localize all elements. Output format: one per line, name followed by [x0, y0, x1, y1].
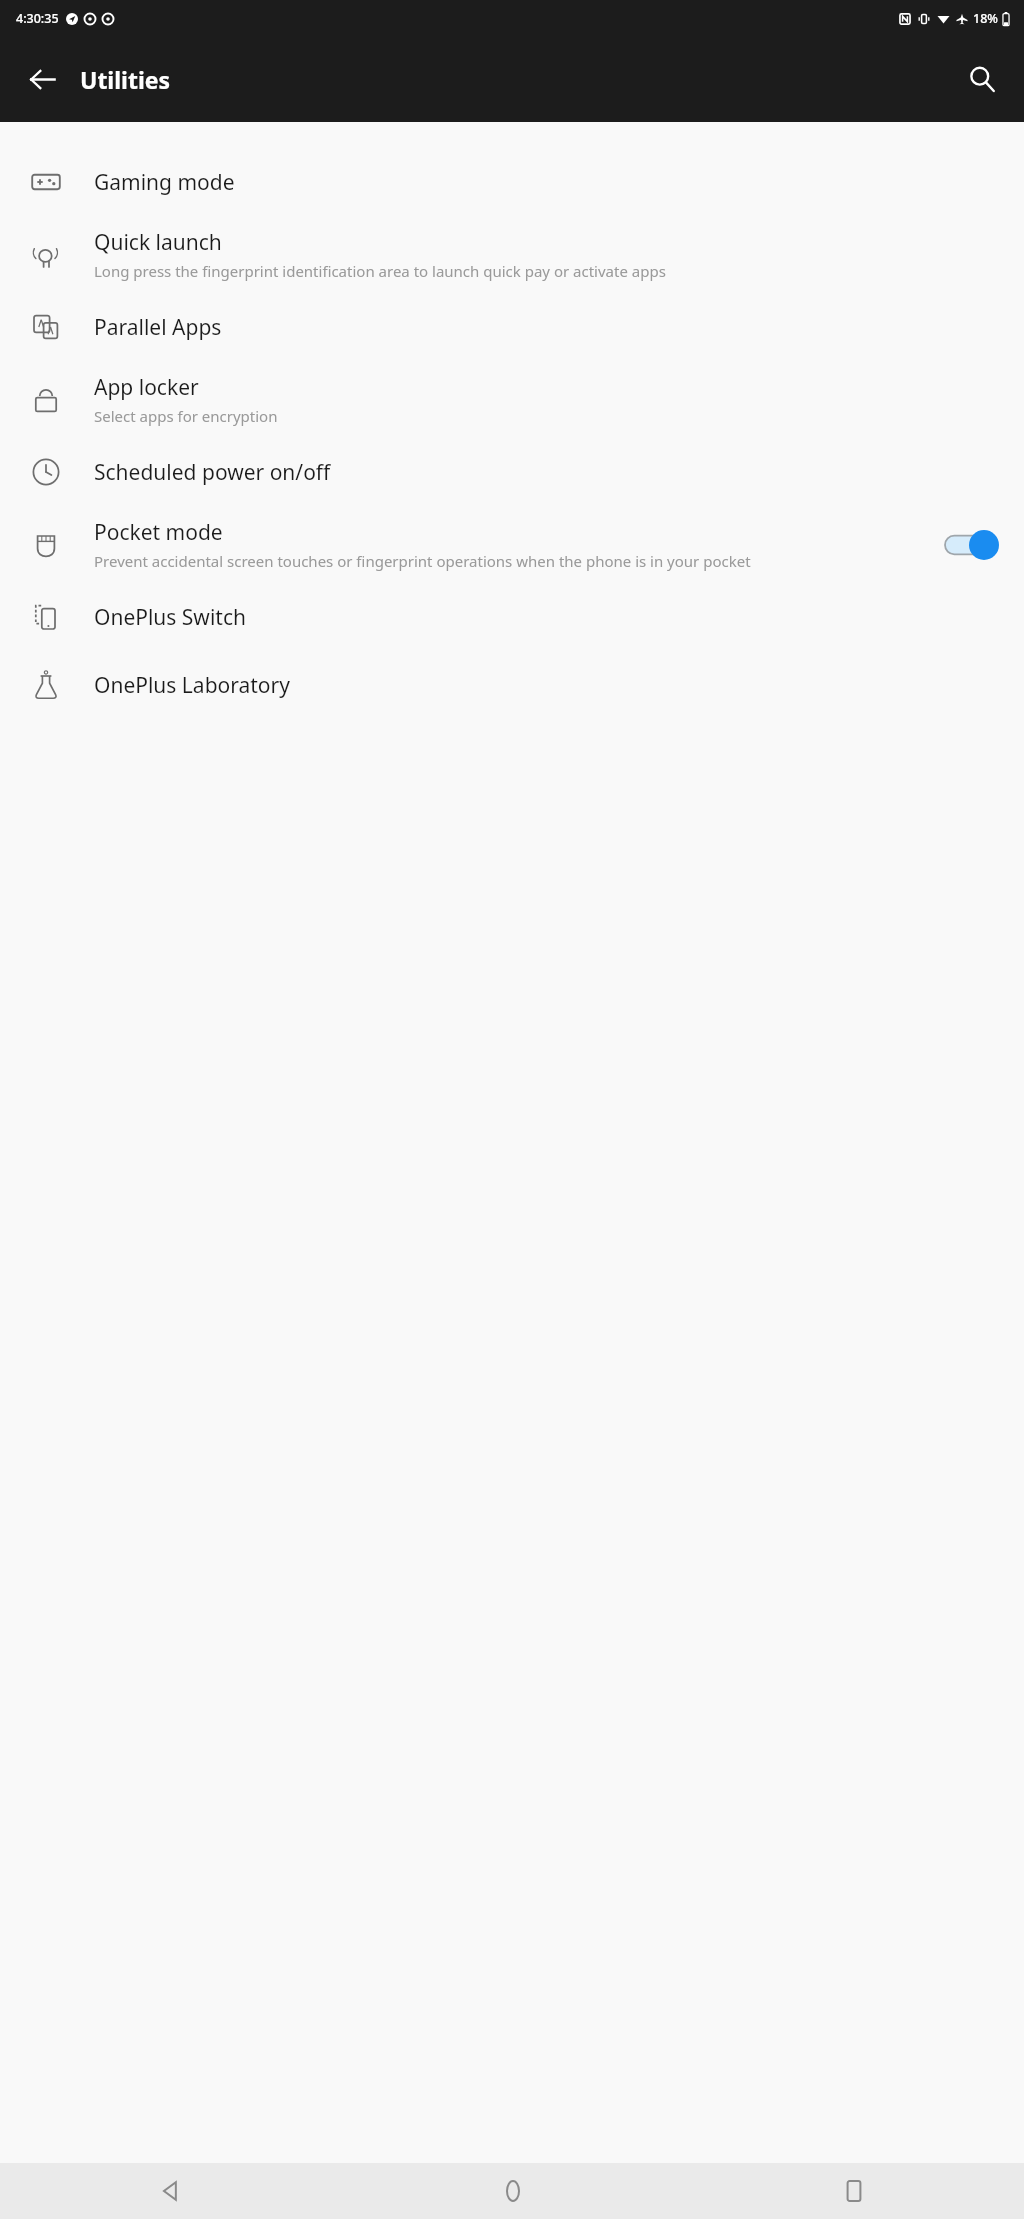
button[interactable]: Home — [342, 2163, 683, 2219]
staticText: App locker — [94, 373, 199, 402]
staticText: Utilities — [80, 64, 171, 95]
staticText: Gaming mode — [94, 168, 235, 197]
button[interactable]: Search — [954, 51, 1010, 107]
staticText: 18% — [973, 10, 998, 27]
staticText: Select apps for encryption — [94, 406, 278, 426]
staticText: OnePlus Switch — [94, 603, 246, 632]
button[interactable]: OnePlus Laboratory — [0, 651, 1024, 719]
staticText: Scheduled power on/off — [94, 458, 331, 487]
staticText: OnePlus Laboratory — [94, 671, 290, 700]
staticText: Parallel Apps — [94, 313, 222, 342]
button[interactable]: OnePlus Switch — [0, 583, 1024, 651]
button[interactable]: App locker — [0, 361, 1024, 438]
staticText: Pocket mode — [94, 518, 223, 547]
staticText: Quick launch — [94, 228, 222, 257]
button[interactable]: Scheduled power on/off — [0, 438, 1024, 506]
button[interactable]: Recent apps — [683, 2163, 1024, 2219]
button[interactable]: Back — [0, 2163, 342, 2219]
button[interactable]: Pocket mode — [0, 506, 1024, 583]
button[interactable]: Parallel Apps — [0, 293, 1024, 361]
staticText: Prevent accidental screen touches or fin… — [94, 551, 751, 571]
button[interactable]: Quick launch — [0, 216, 1024, 293]
staticText: 4:30:35 — [16, 10, 59, 27]
button[interactable]: Gaming mode — [0, 148, 1024, 216]
button[interactable]: Pocket mode toggle — [944, 525, 1000, 565]
staticText: Long press the fingerprint identificatio… — [94, 261, 666, 281]
button[interactable]: Back — [14, 51, 70, 107]
